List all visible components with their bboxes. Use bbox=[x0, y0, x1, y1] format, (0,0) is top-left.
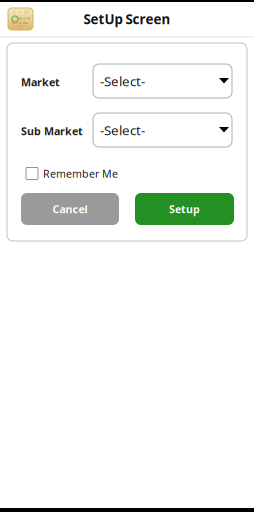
staticText: Market bbox=[21, 75, 60, 89]
button[interactable]: Sub Market, -Select- bbox=[93, 113, 232, 147]
staticText: Remember Me bbox=[43, 166, 118, 181]
staticText: SetUp Screen bbox=[83, 10, 170, 28]
button[interactable]: Cancel bbox=[21, 193, 119, 225]
staticText: Cancel bbox=[52, 202, 87, 216]
staticText: Sub Market bbox=[21, 124, 83, 138]
staticText: -Select- bbox=[100, 121, 145, 139]
staticText: Setup bbox=[169, 202, 200, 216]
button[interactable]: Market, -Select- bbox=[93, 64, 232, 98]
button[interactable]: Setup bbox=[135, 193, 234, 225]
staticText: -Select- bbox=[100, 72, 145, 90]
button[interactable]: Remember Me bbox=[26, 167, 118, 180]
